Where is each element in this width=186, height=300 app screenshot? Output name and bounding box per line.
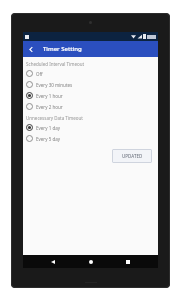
staticText: Every 5 day [36, 136, 60, 142]
button[interactable]: Home [84, 255, 98, 268]
button[interactable]: Every 30 minutes [23, 79, 158, 90]
staticText: Every 1 day [36, 125, 60, 131]
button[interactable]: Every 1 day [23, 122, 158, 133]
staticText: Every 30 minutes [36, 82, 73, 88]
button[interactable]: Recent apps [121, 255, 135, 268]
staticText: Every 1 hour [36, 93, 63, 99]
button[interactable]: UPDATED [112, 149, 152, 163]
button[interactable]: Off [23, 68, 158, 79]
button[interactable]: Back [46, 255, 60, 268]
staticText: UPDATED [122, 153, 143, 159]
staticText: Every 2 hour [36, 104, 63, 110]
button[interactable]: Every 1 hour [23, 90, 158, 101]
staticText: Unnecessary Data Timeout [26, 115, 83, 121]
button[interactable]: Every 5 day [23, 133, 158, 144]
staticText: Scheduled Interval Timeout [26, 61, 85, 67]
button[interactable]: Every 2 hour [23, 101, 158, 112]
button[interactable]: Back [23, 41, 39, 57]
staticText: Off [36, 71, 43, 77]
staticText: Timer Setting [43, 45, 82, 53]
